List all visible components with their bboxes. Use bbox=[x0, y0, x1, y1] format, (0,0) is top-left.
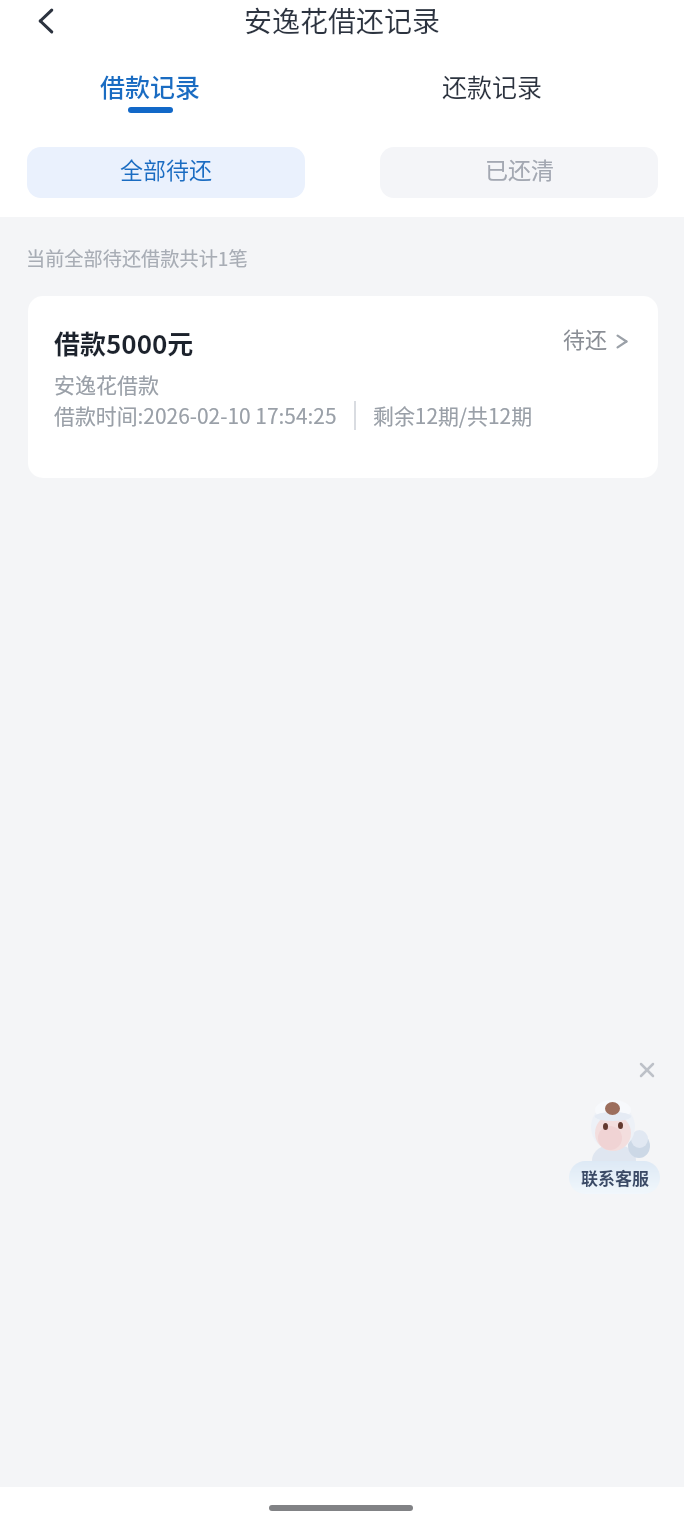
staticText: 当前全部待还借款共计1笔 bbox=[26, 244, 248, 272]
button[interactable]: Back bbox=[24, 0, 68, 43]
button[interactable]: 借款5000元 bbox=[28, 296, 658, 478]
staticText: 已还清 bbox=[485, 152, 554, 185]
button[interactable]: 借款记录 bbox=[80, 58, 220, 120]
staticText: 剩余12期/共12期 bbox=[373, 400, 533, 430]
button[interactable]: 已还清 bbox=[380, 147, 658, 198]
button[interactable]: Close bbox=[627, 1050, 667, 1090]
staticText: 借款记录 bbox=[100, 68, 201, 104]
staticText: 全部待还 bbox=[120, 152, 212, 185]
staticText: 借款时间:2026-02-10 17:54:25 bbox=[54, 400, 337, 430]
staticText: 安逸花借款 bbox=[54, 369, 159, 399]
staticText: 还款记录 bbox=[442, 68, 543, 104]
staticText: 联系客服 bbox=[581, 1165, 649, 1190]
button[interactable]: 还款记录 bbox=[422, 58, 562, 120]
staticText: 借款5000元 bbox=[54, 324, 194, 362]
staticText: 安逸花借还记录 bbox=[244, 0, 441, 41]
staticText: 待还 bbox=[563, 322, 608, 354]
button[interactable]: Contact customer service bbox=[566, 1095, 664, 1195]
button[interactable]: 全部待还 bbox=[27, 147, 305, 198]
